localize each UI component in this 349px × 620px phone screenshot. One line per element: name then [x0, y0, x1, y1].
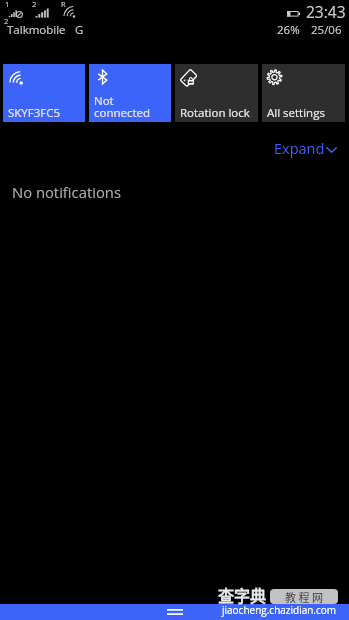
staticText: jiaocheng.chazidian.com	[222, 603, 337, 617]
button[interactable]: All settings	[262, 64, 345, 122]
staticText: 1	[5, 0, 10, 9]
staticText: No notifications	[12, 182, 121, 202]
staticText: SKYF3FC5	[8, 108, 61, 120]
button[interactable]: Hide navigation bar	[0, 604, 349, 620]
button[interactable]: Wi-Fi SKYF3FC5	[3, 64, 85, 122]
button[interactable]: Bluetooth not connected	[89, 64, 171, 122]
staticText: Talkmobile	[7, 22, 66, 38]
staticText: Rotation lock	[180, 108, 250, 120]
staticText: G	[75, 22, 84, 38]
staticText: All settings	[267, 108, 325, 120]
staticText: 23:43	[306, 1, 346, 22]
button[interactable]: Rotation lock	[175, 64, 258, 122]
staticText: 2	[32, 0, 37, 9]
staticText: 26%	[277, 22, 300, 38]
staticText: R	[61, 0, 66, 9]
staticText: Not connected	[94, 96, 151, 120]
staticText: 查字典	[218, 583, 267, 606]
staticText: 2	[4, 16, 9, 26]
staticText: 教 程 网	[285, 589, 323, 604]
button[interactable]: Expand	[260, 136, 349, 165]
staticText: Expand	[274, 139, 325, 159]
staticText: 25/06	[311, 22, 342, 38]
